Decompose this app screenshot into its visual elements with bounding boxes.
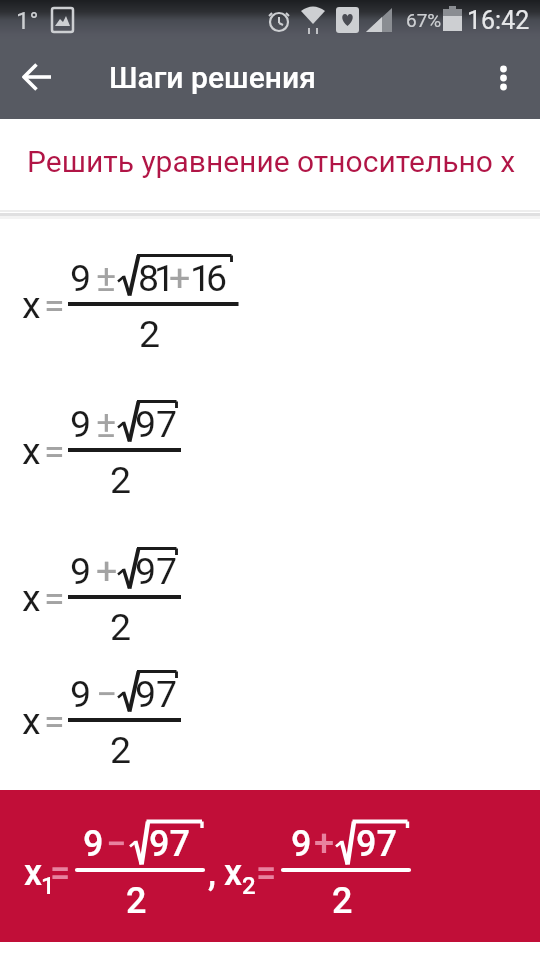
staticText: 9 <box>70 256 92 300</box>
staticText: 9 <box>83 823 104 865</box>
staticText: = <box>44 576 65 620</box>
staticText: = <box>50 852 71 894</box>
staticText: 2 <box>139 312 161 356</box>
button[interactable] <box>0 790 540 942</box>
staticText: = <box>256 852 277 894</box>
staticText: Решить уравнение относительно x <box>27 144 516 179</box>
staticText: 2 <box>242 872 256 900</box>
staticText: = <box>44 429 65 473</box>
staticText: 1° <box>16 7 39 35</box>
staticText: 97 <box>356 823 397 865</box>
staticText: 1 <box>41 872 55 900</box>
staticText: 2 <box>110 728 132 772</box>
staticText: 2 <box>332 880 353 922</box>
staticText: 9 <box>70 549 92 593</box>
staticText: 8 <box>138 256 160 300</box>
staticText: 9 <box>291 823 312 865</box>
staticText: 6 <box>206 256 228 300</box>
staticText: = <box>44 699 65 743</box>
staticText: = <box>44 283 65 327</box>
staticText: 1 <box>190 256 212 300</box>
staticText: 67% <box>406 9 442 31</box>
staticText: Шаги решения <box>109 60 316 95</box>
staticText: x <box>24 852 43 894</box>
staticText: ± <box>96 402 117 446</box>
button[interactable] <box>14 54 60 100</box>
staticText: + <box>169 256 191 300</box>
staticText: 97 <box>135 672 178 716</box>
staticText: 9 <box>70 672 92 716</box>
staticText: , <box>208 852 216 894</box>
button[interactable] <box>0 119 540 210</box>
staticText: 97 <box>149 823 190 865</box>
staticText: x <box>22 699 41 743</box>
staticText: 2 <box>110 605 132 649</box>
staticText: 9 <box>70 402 92 446</box>
staticText: x <box>224 852 243 894</box>
staticText: − <box>96 672 118 716</box>
staticText: − <box>106 823 127 865</box>
staticText: 2 <box>126 880 147 922</box>
staticText: 16:42 <box>467 6 530 35</box>
staticText: x <box>22 429 41 473</box>
staticText: x <box>22 576 41 620</box>
staticText: 97 <box>135 549 178 593</box>
staticText: 97 <box>135 402 178 446</box>
staticText: x <box>22 283 41 327</box>
staticText: 2 <box>110 458 132 502</box>
staticText: + <box>314 823 335 865</box>
staticText: 1 <box>154 256 176 300</box>
button[interactable] <box>482 56 526 100</box>
staticText: ± <box>96 256 117 300</box>
staticText: + <box>96 549 118 593</box>
